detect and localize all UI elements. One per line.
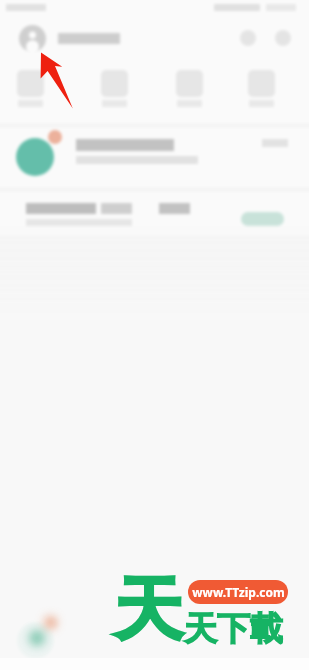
button[interactable]: Search xyxy=(240,30,256,46)
button[interactable]: Shortcut xyxy=(176,70,203,107)
staticText: 天 xyxy=(114,567,183,654)
button[interactable]: More options xyxy=(275,30,291,46)
button[interactable] xyxy=(0,192,309,236)
staticText: 天下載 xyxy=(184,608,283,650)
button[interactable] xyxy=(0,608,309,665)
button[interactable]: Shortcut xyxy=(17,70,44,107)
staticText: www.TTzip.com xyxy=(192,584,285,600)
button[interactable]: Shortcut xyxy=(101,70,128,107)
button[interactable]: Action xyxy=(241,212,284,226)
button[interactable]: Shortcut xyxy=(248,70,275,107)
button[interactable]: Account xyxy=(19,25,46,52)
button[interactable] xyxy=(0,128,309,187)
